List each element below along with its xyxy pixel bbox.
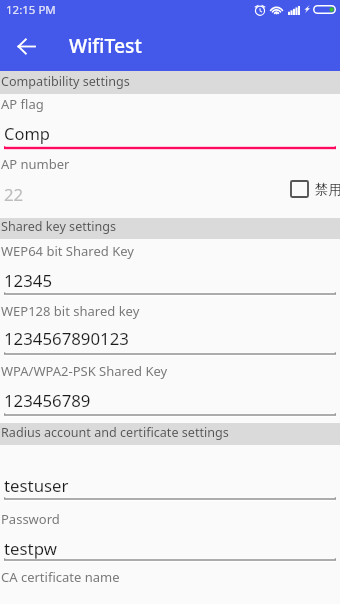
- staticText: AP flag: [1, 95, 44, 113]
- staticText: Comp: [4, 122, 50, 144]
- staticText: testuser: [4, 474, 69, 497]
- staticText: 禁用: [315, 181, 340, 198]
- staticText: CA certificate name: [1, 568, 120, 586]
- staticText: WEP64 bit Shared Key: [1, 242, 134, 260]
- staticText: AP number: [1, 155, 70, 173]
- staticText: 12:15 PM: [6, 2, 56, 18]
- staticText: Password: [1, 510, 60, 528]
- staticText: WEP128 bit shared key: [1, 302, 140, 320]
- staticText: 1234567890123: [4, 327, 129, 350]
- staticText: WifiTest: [69, 32, 142, 58]
- staticText: Shared key settings: [1, 218, 117, 235]
- staticText: Radius account and certificate settings: [1, 424, 229, 441]
- staticText: 22: [4, 183, 24, 206]
- button[interactable]: Navigate up: [11, 32, 41, 60]
- staticText: testpw: [4, 537, 57, 560]
- staticText: 123456789: [4, 389, 91, 412]
- staticText: 12345: [4, 269, 53, 292]
- staticText: WPA/WPA2-PSK Shared Key: [1, 362, 168, 380]
- button[interactable]: 禁用: [290, 179, 340, 199]
- staticText: Compatibility settings: [1, 73, 130, 90]
